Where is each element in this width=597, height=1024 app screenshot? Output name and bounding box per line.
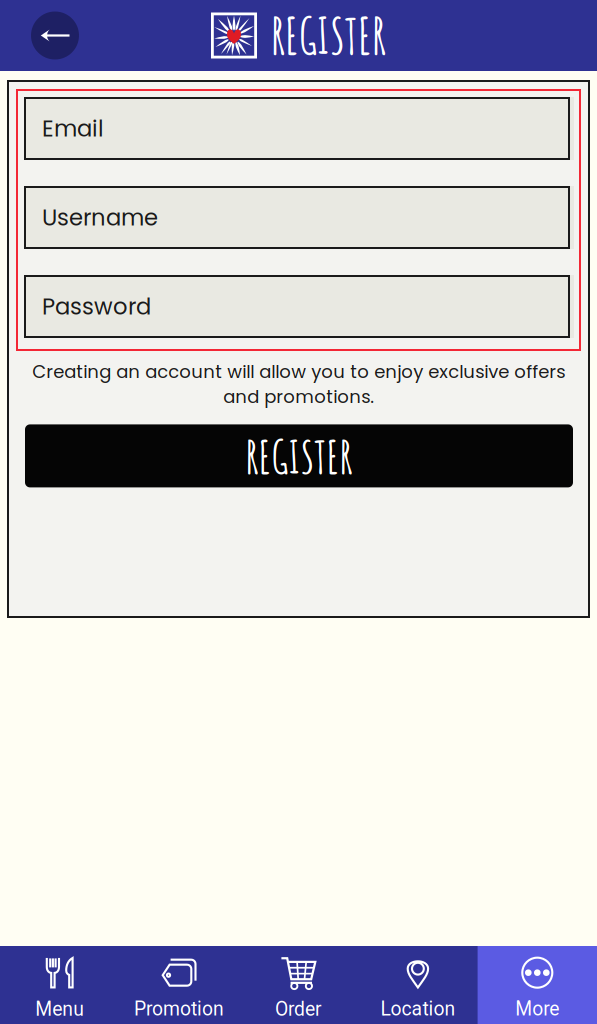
staticText: Order (275, 998, 322, 1021)
button[interactable]: REGISTER (25, 424, 573, 487)
button[interactable]: Username (24, 186, 574, 249)
button[interactable]: More (478, 946, 597, 1024)
button[interactable]: Back (29, 9, 81, 61)
button[interactable]: Email (24, 97, 574, 160)
staticText: More (515, 998, 559, 1020)
staticText: Promotion (134, 998, 224, 1020)
button[interactable]: Password (24, 275, 574, 338)
staticText: Email (42, 113, 104, 144)
staticText: REGISTER (245, 427, 352, 484)
staticText: REGISTER (271, 5, 386, 66)
staticText: Menu (35, 998, 84, 1021)
staticText: Password (42, 291, 151, 322)
staticText: Username (42, 202, 158, 233)
button[interactable]: Location (358, 946, 478, 1024)
staticText: Location (380, 998, 455, 1020)
button[interactable]: Menu (0, 946, 119, 1024)
button[interactable]: Promotion (119, 946, 239, 1024)
staticText: Creating an account will allow you to en… (32, 359, 565, 409)
button[interactable]: Order (239, 946, 358, 1024)
